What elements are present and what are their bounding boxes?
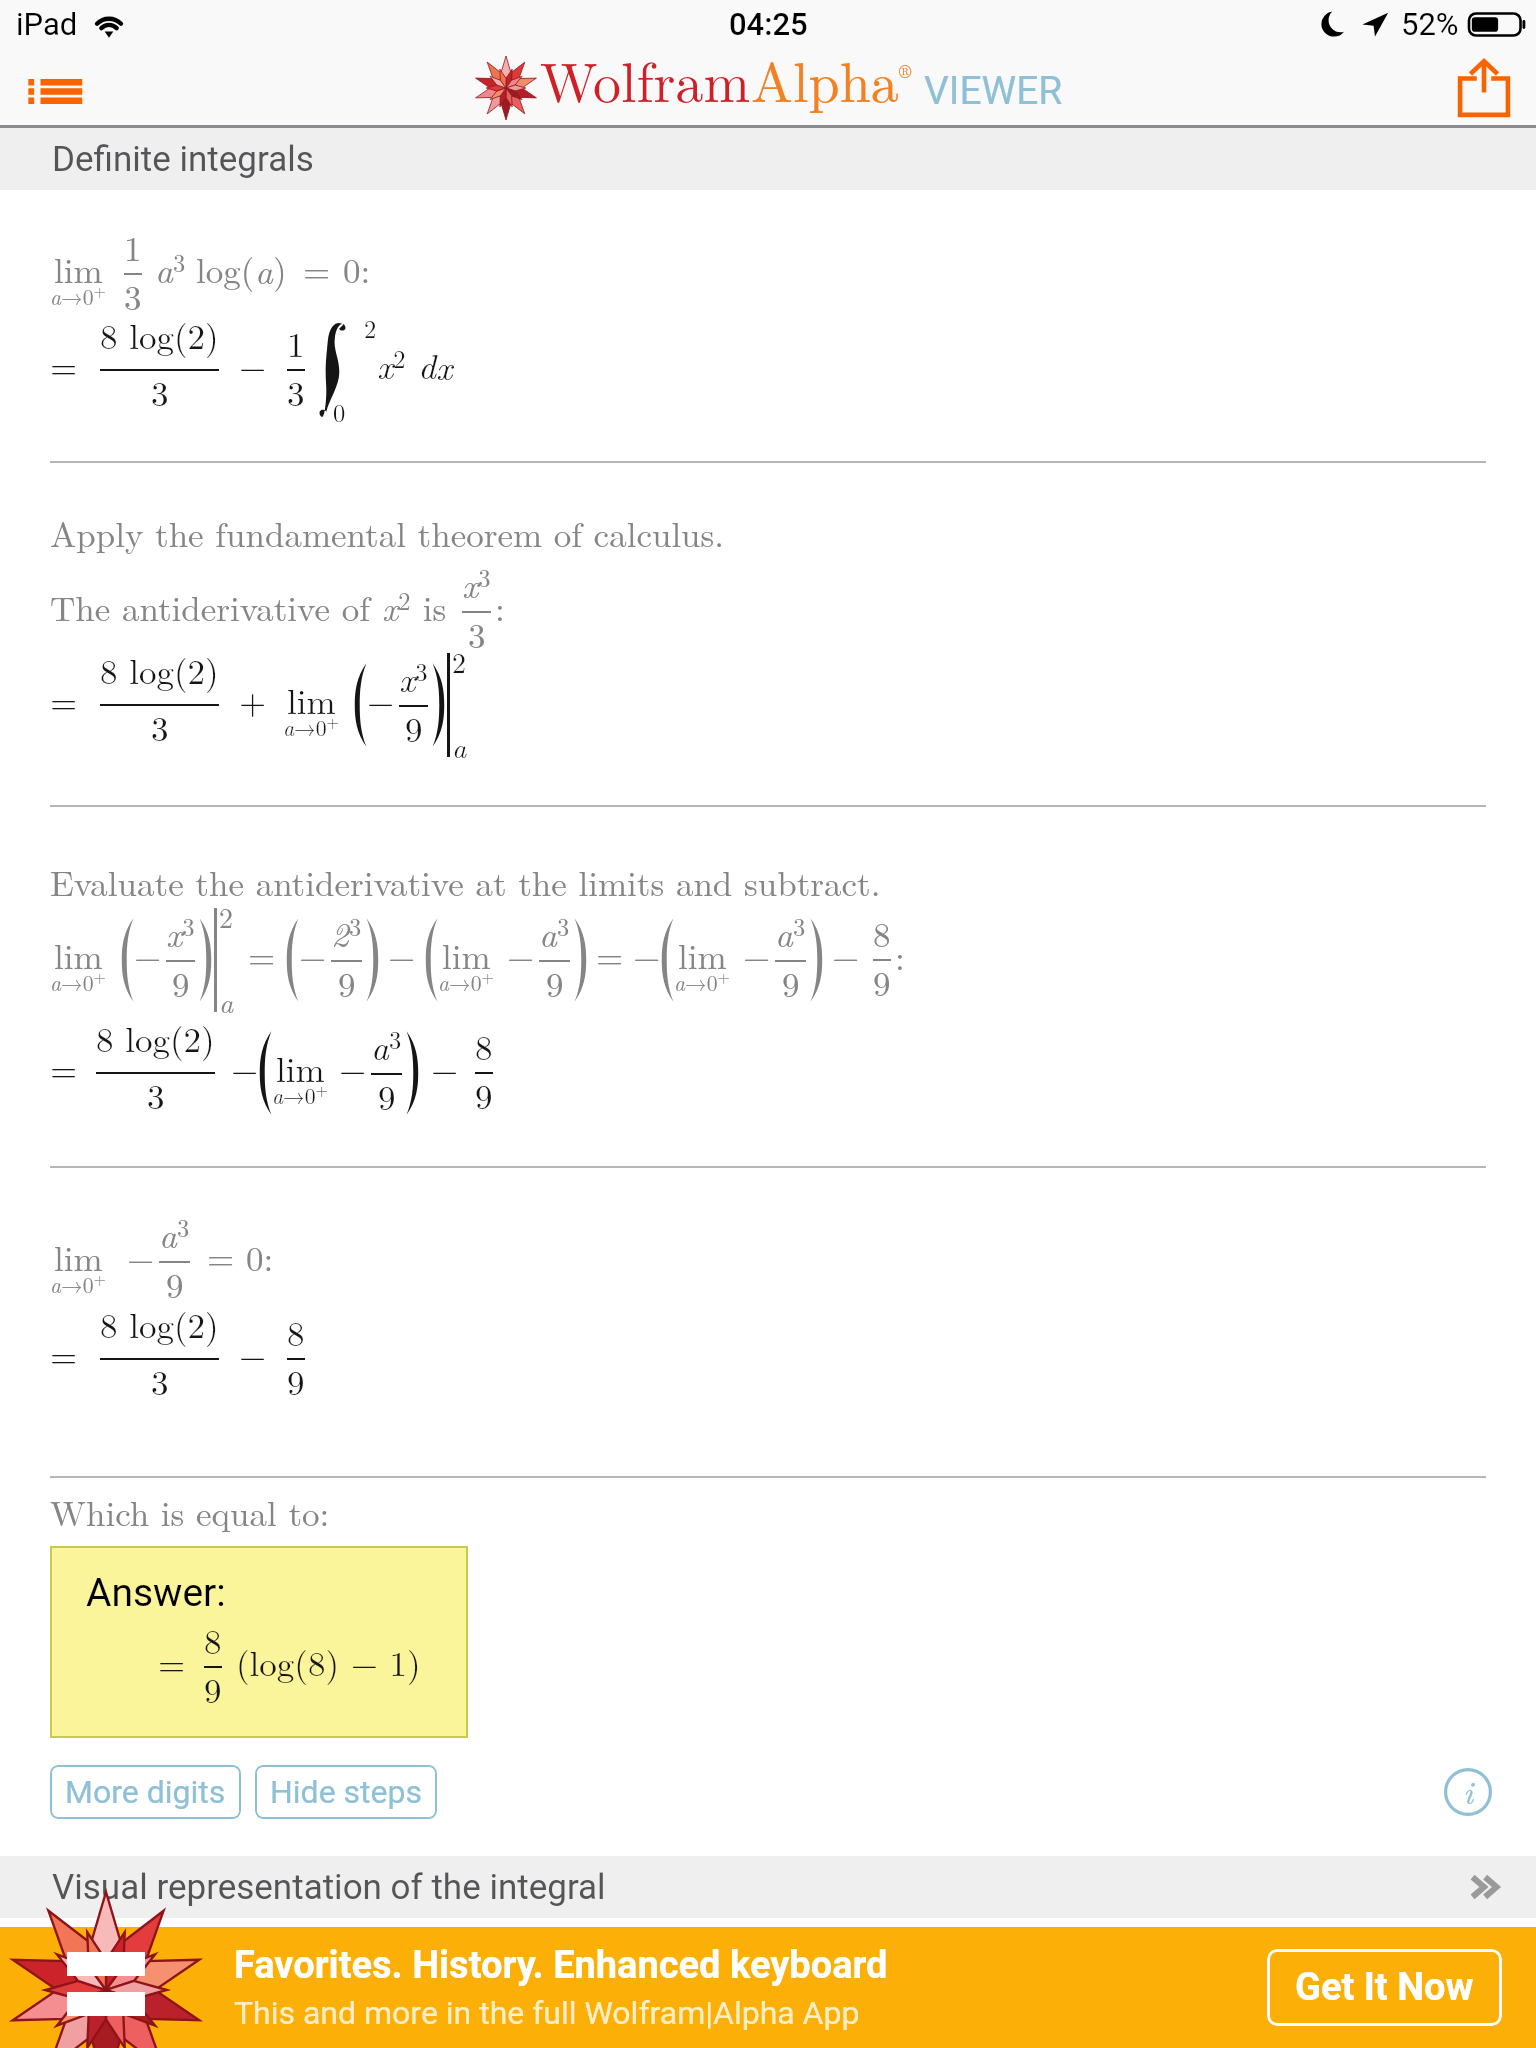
button[interactable]: Favorites. History. Enhanced keyboard bbox=[0, 1927, 1536, 2048]
staticText: 9 bbox=[338, 958, 356, 1008]
staticText: = bbox=[158, 1637, 186, 1687]
staticText: 52% bbox=[1401, 6, 1459, 42]
staticText: = bbox=[50, 1043, 78, 1093]
staticText: Definite integrals bbox=[52, 139, 314, 180]
staticText: 04:25 bbox=[729, 6, 808, 42]
staticText: 8 log(2) bbox=[96, 1013, 215, 1063]
staticText: = bbox=[50, 1329, 78, 1379]
button[interactable]: Get It Now bbox=[1267, 1949, 1502, 2026]
staticText: lim bbox=[276, 1043, 325, 1093]
staticText: 3 bbox=[151, 1356, 169, 1406]
button[interactable]: Share bbox=[1458, 60, 1510, 116]
button[interactable]: Visual representation of the integral bbox=[0, 1856, 1536, 1918]
staticText: a→0+ bbox=[50, 279, 107, 311]
staticText: lim bbox=[54, 930, 103, 980]
staticText: Get It Now bbox=[1295, 1965, 1474, 2010]
staticText: 8 log(2) bbox=[100, 1299, 219, 1349]
staticText: 8 log(2) bbox=[100, 645, 219, 695]
staticText: x bbox=[436, 341, 453, 391]
staticText: a→0+ bbox=[50, 1267, 107, 1299]
staticText: 1 bbox=[124, 222, 142, 272]
staticText: x3 bbox=[166, 908, 195, 958]
staticText: a→0+ bbox=[674, 965, 731, 997]
staticText: − bbox=[633, 930, 661, 980]
staticText: a bbox=[452, 726, 467, 766]
staticText: x2 bbox=[377, 340, 406, 390]
staticText: a→0+ bbox=[283, 710, 340, 742]
staticText: 9 bbox=[475, 1070, 493, 1120]
staticText: + bbox=[239, 675, 267, 725]
staticText: Evaluate the antiderivative at the limit… bbox=[50, 857, 881, 907]
staticText: 1 bbox=[287, 318, 305, 368]
staticText: Favorites. History. Enhanced keyboard bbox=[234, 1943, 888, 1988]
staticText: − bbox=[367, 675, 395, 725]
staticText: (log(8) − 1) bbox=[236, 1637, 421, 1687]
staticText: Visual representation of the integral bbox=[52, 1867, 606, 1908]
staticText: 9 bbox=[287, 1356, 305, 1406]
staticText: 8 bbox=[287, 1307, 305, 1357]
button[interactable]: Hide steps bbox=[255, 1765, 437, 1819]
staticText: d bbox=[418, 340, 436, 390]
staticText: 3 bbox=[124, 271, 142, 321]
staticText: lim bbox=[287, 675, 336, 725]
staticText: lim bbox=[54, 1232, 103, 1282]
staticText: a3 bbox=[539, 908, 570, 958]
staticText: − bbox=[339, 1043, 367, 1093]
staticText: 9 bbox=[546, 958, 564, 1008]
staticText: 8 bbox=[873, 908, 891, 958]
staticText: 8 bbox=[204, 1615, 222, 1665]
staticText: a bbox=[255, 245, 273, 295]
staticText: x3 bbox=[462, 559, 491, 609]
staticText: 8 log(2) bbox=[100, 310, 219, 360]
staticText: − bbox=[239, 340, 267, 390]
staticText: − bbox=[127, 1232, 155, 1282]
button[interactable]: More digits bbox=[50, 1765, 241, 1819]
staticText: = bbox=[50, 340, 78, 390]
staticText: lim bbox=[678, 930, 727, 980]
staticText: lim bbox=[442, 930, 491, 980]
staticText: 23 bbox=[331, 908, 362, 958]
staticText: VIEWER bbox=[924, 68, 1063, 114]
staticText: Which is equal to: bbox=[50, 1487, 330, 1537]
staticText: a→0+ bbox=[438, 965, 495, 997]
staticText: = bbox=[596, 930, 624, 980]
staticText: 0: bbox=[246, 1232, 274, 1282]
staticText: = bbox=[303, 244, 331, 294]
staticText: ® bbox=[899, 58, 912, 84]
staticText: 2 bbox=[452, 641, 467, 681]
staticText: − bbox=[743, 930, 771, 980]
staticText: 9 bbox=[166, 1259, 184, 1309]
staticText: x3 bbox=[399, 653, 428, 703]
staticText: 3 bbox=[151, 367, 169, 417]
staticText: iPad bbox=[16, 6, 78, 42]
staticText: More digits bbox=[65, 1773, 226, 1811]
staticText: − bbox=[239, 1329, 267, 1379]
staticText: is bbox=[411, 582, 458, 632]
staticText: − bbox=[388, 930, 416, 980]
button[interactable]: Information bbox=[1444, 1768, 1492, 1816]
staticText: ) bbox=[273, 244, 287, 294]
staticText: 9 bbox=[378, 1071, 396, 1121]
staticText: = bbox=[50, 675, 78, 725]
staticText: log( bbox=[196, 244, 255, 294]
staticText: = bbox=[207, 1231, 235, 1281]
staticText: − bbox=[507, 930, 535, 980]
staticText: Alpha bbox=[751, 39, 899, 118]
staticText: i bbox=[1463, 1767, 1474, 1814]
staticText: 9 bbox=[873, 957, 891, 1007]
staticText: 3 bbox=[468, 609, 486, 659]
staticText: Apply the fundamental theorem of calculu… bbox=[50, 508, 725, 558]
button[interactable]: Definite integrals bbox=[0, 128, 1536, 190]
staticText: 0: bbox=[343, 244, 371, 294]
staticText: a3 bbox=[775, 908, 806, 958]
staticText: a→0+ bbox=[272, 1078, 329, 1110]
staticText: : bbox=[495, 582, 505, 632]
staticText: 0 bbox=[333, 394, 346, 429]
staticText: 3 bbox=[147, 1070, 165, 1120]
staticText: 2 bbox=[219, 896, 234, 936]
button[interactable]: Menu bbox=[26, 63, 84, 113]
staticText: a3 bbox=[371, 1021, 402, 1071]
staticText: 3 bbox=[151, 702, 169, 752]
staticText: 9 bbox=[782, 958, 800, 1008]
staticText: The antiderivative of bbox=[50, 582, 382, 632]
